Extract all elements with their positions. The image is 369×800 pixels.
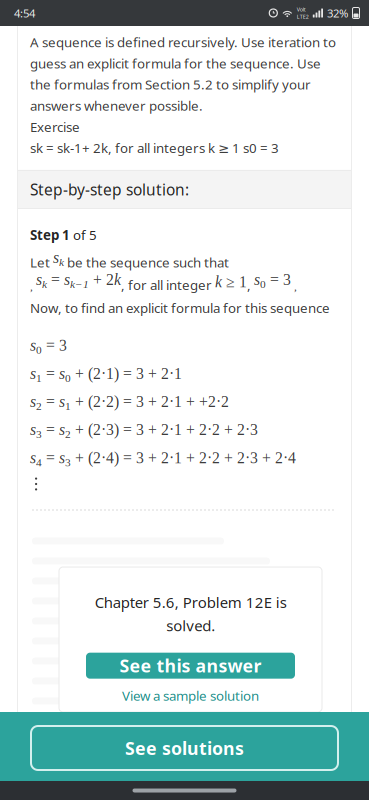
staticText: 32% [327,5,348,21]
staticText: A sequence is defined recursively. Use i… [30,33,336,157]
staticText: See this answer [119,654,261,678]
staticText: Step 1 of 5 [30,226,97,244]
staticText: sk = sk−1 + 2k [36,271,121,290]
button[interactable]: See this answer [86,653,295,679]
staticText: See solutions [125,736,244,760]
staticText: s0 = 3 [254,271,291,290]
staticText: s2 = s1 + (2·2) = 3 + 2·1 + +2·2 [30,393,229,412]
staticText: Volt LTE2 [297,6,309,20]
staticText: s0 = 3 [30,337,67,356]
staticText: View a sample solution [122,687,259,705]
staticText: be the sequence such that [64,253,229,271]
staticText: , [247,276,254,294]
staticText: Step-by-step solution: [30,179,189,200]
staticText: Let [30,253,53,271]
staticText: s4 = s3 + (2·4) = 3 + 2·1 + 2·2 + 2·3 + … [30,449,296,468]
staticText: , for all integer [121,276,215,294]
staticText: s1 = s0 + (2·1) = 3 + 2·1 [30,365,182,384]
staticText: sk [53,249,64,268]
staticText: , [291,280,297,293]
staticText: k ≥ 1 [215,273,247,290]
staticText: Chapter 5.6, Problem 12E is solved. [94,592,286,636]
staticText: Now, to find an explicit formula for thi… [30,299,330,317]
staticText: , [30,280,36,293]
button[interactable]: See solutions [0,712,369,781]
staticText: s3 = s2 + (2·3) = 3 + 2·1 + 2·2 + 2·3 [30,421,258,440]
staticText: 4:54 [14,5,35,21]
button[interactable]: View a sample solution [114,686,267,706]
